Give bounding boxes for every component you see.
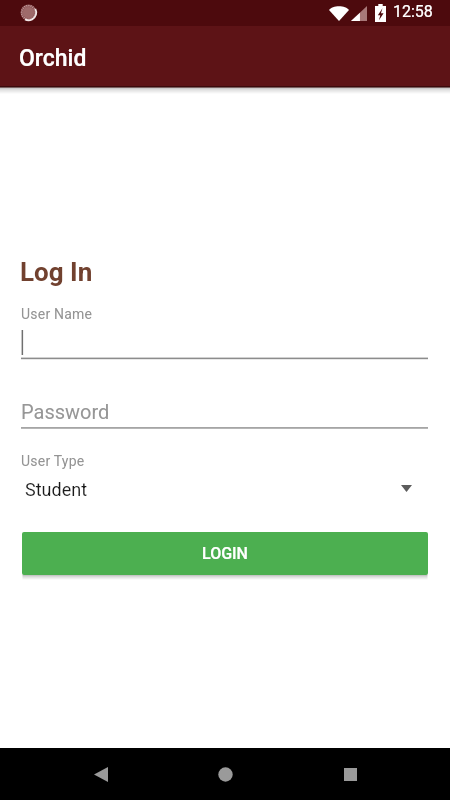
staticText: LOGIN (202, 544, 248, 563)
button[interactable]: Password (0, 396, 450, 432)
button[interactable] (0, 325, 450, 363)
staticText: Student (25, 479, 88, 500)
button[interactable]: Back (77, 750, 125, 798)
staticText: User Name (21, 306, 93, 322)
staticText: User Type (21, 453, 85, 469)
button[interactable]: Recent apps (326, 750, 374, 798)
staticText: Log In (20, 257, 93, 287)
button[interactable]: Home (201, 750, 249, 798)
button[interactable]: LOGIN (22, 532, 428, 575)
staticText: Orchid (19, 45, 87, 72)
button[interactable]: Student (0, 470, 450, 504)
staticText: Password (21, 400, 110, 423)
staticText: 12:58 (393, 2, 433, 21)
